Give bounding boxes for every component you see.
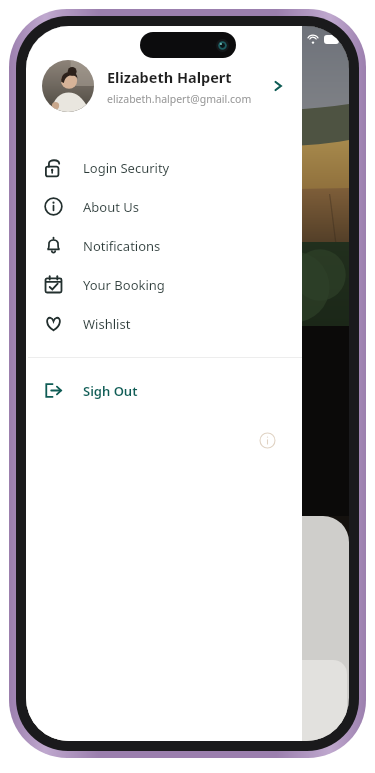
button[interactable]: Notifications — [26, 226, 302, 265]
button[interactable]: Wishlist — [26, 304, 302, 343]
staticText: Login Security — [83, 159, 170, 177]
other: Info — [259, 432, 276, 449]
button[interactable]: Elizabeth Halpert — [26, 54, 302, 118]
staticText: Wishlist — [83, 315, 131, 333]
staticText: elizabeth.halpert@gmail.com — [107, 92, 252, 106]
other: Open profile — [268, 76, 288, 96]
button[interactable]: Your Booking — [26, 265, 302, 304]
button[interactable]: About Us — [26, 187, 302, 226]
staticText: es, — [32, 348, 48, 364]
staticText: Sigh Out — [83, 382, 138, 400]
button[interactable]: Login Security — [26, 148, 302, 187]
staticText: About Us — [83, 198, 140, 216]
staticText: Notifications — [83, 237, 161, 255]
button[interactable]: Sigh Out — [26, 371, 302, 410]
staticText: Elizabeth Halpert — [107, 67, 232, 87]
staticText: Your Booking — [83, 276, 165, 294]
